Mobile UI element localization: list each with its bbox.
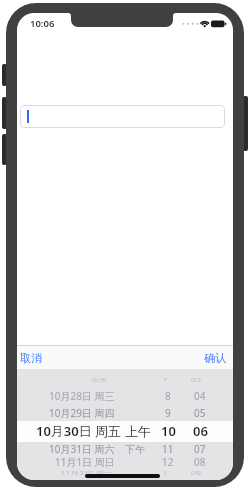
- staticText: 09: [191, 470, 201, 477]
- staticText: 7: [163, 377, 168, 384]
- staticText: 上午: [125, 423, 151, 439]
- button[interactable]: 今天: [23, 375, 226, 385]
- staticText: 06: [193, 422, 208, 440]
- staticText: 04: [194, 389, 206, 403]
- button[interactable]: 10月29日 周四: [17, 404, 233, 422]
- staticText: 10: [161, 422, 176, 440]
- staticText: 取消: [20, 351, 42, 365]
- button[interactable]: 10月30日 周五: [17, 422, 233, 440]
- staticText: 1: [163, 470, 168, 477]
- staticText: 9: [165, 406, 171, 420]
- button[interactable]: 10月28日 周三: [17, 387, 233, 405]
- button[interactable]: 确认: [204, 346, 226, 369]
- button[interactable]: 11月1日 周日: [17, 453, 233, 471]
- button[interactable]: 11月2日 周一: [23, 468, 226, 478]
- staticText: 12: [162, 455, 174, 469]
- staticText: 10月30日 周五: [36, 422, 122, 440]
- staticText: 11: [162, 442, 174, 456]
- staticText: 10月28日 周三: [49, 389, 115, 403]
- staticText: 今天: [90, 377, 108, 383]
- button[interactable]: [20, 105, 225, 128]
- staticText: 08: [194, 455, 206, 469]
- button[interactable]: 10月31日 周六: [17, 440, 233, 458]
- staticText: 确认: [204, 351, 226, 365]
- staticText: 10:06: [30, 17, 55, 30]
- staticText: 8: [165, 389, 171, 403]
- staticText: 11月2日 周一: [60, 470, 114, 477]
- staticText: 下午: [125, 443, 145, 456]
- staticText: 10月31日 周六: [49, 442, 115, 456]
- staticText: 11月1日 周日: [55, 455, 115, 469]
- staticText: 05: [194, 406, 206, 420]
- staticText: 07: [194, 442, 206, 456]
- button[interactable]: 取消: [20, 346, 42, 369]
- staticText: 03: [191, 377, 201, 384]
- staticText: 10月29日 周四: [49, 406, 115, 420]
